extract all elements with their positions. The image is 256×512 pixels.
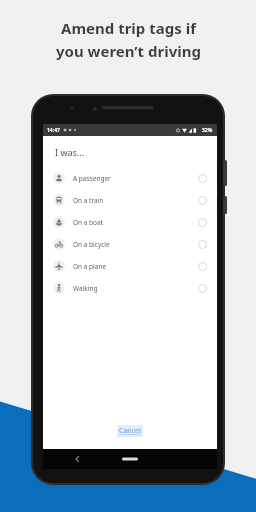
button[interactable]: A passenger <box>43 167 217 189</box>
staticText: On a plane <box>73 262 107 271</box>
button[interactable]: On a plane <box>43 255 217 277</box>
staticText: 14:47 <box>47 127 60 134</box>
staticText: A passenger <box>73 174 111 183</box>
staticText: Amend trip tags if <box>61 18 196 38</box>
staticText: Cancel <box>119 426 141 436</box>
staticText: On a bicycle <box>73 240 110 249</box>
button[interactable]: On a boat <box>43 211 217 233</box>
button[interactable]: Cancel <box>43 425 217 437</box>
staticText: I was... <box>55 146 85 158</box>
button[interactable]: On a train <box>43 189 217 211</box>
staticText: 32% <box>202 127 213 134</box>
staticText: Walking <box>73 284 98 293</box>
staticText: On a train <box>73 196 104 205</box>
staticText: you weren’t driving <box>56 41 201 61</box>
button[interactable]: On a bicycle <box>43 233 217 255</box>
button[interactable]: Walking <box>43 277 217 299</box>
staticText: On a boat <box>73 218 104 227</box>
